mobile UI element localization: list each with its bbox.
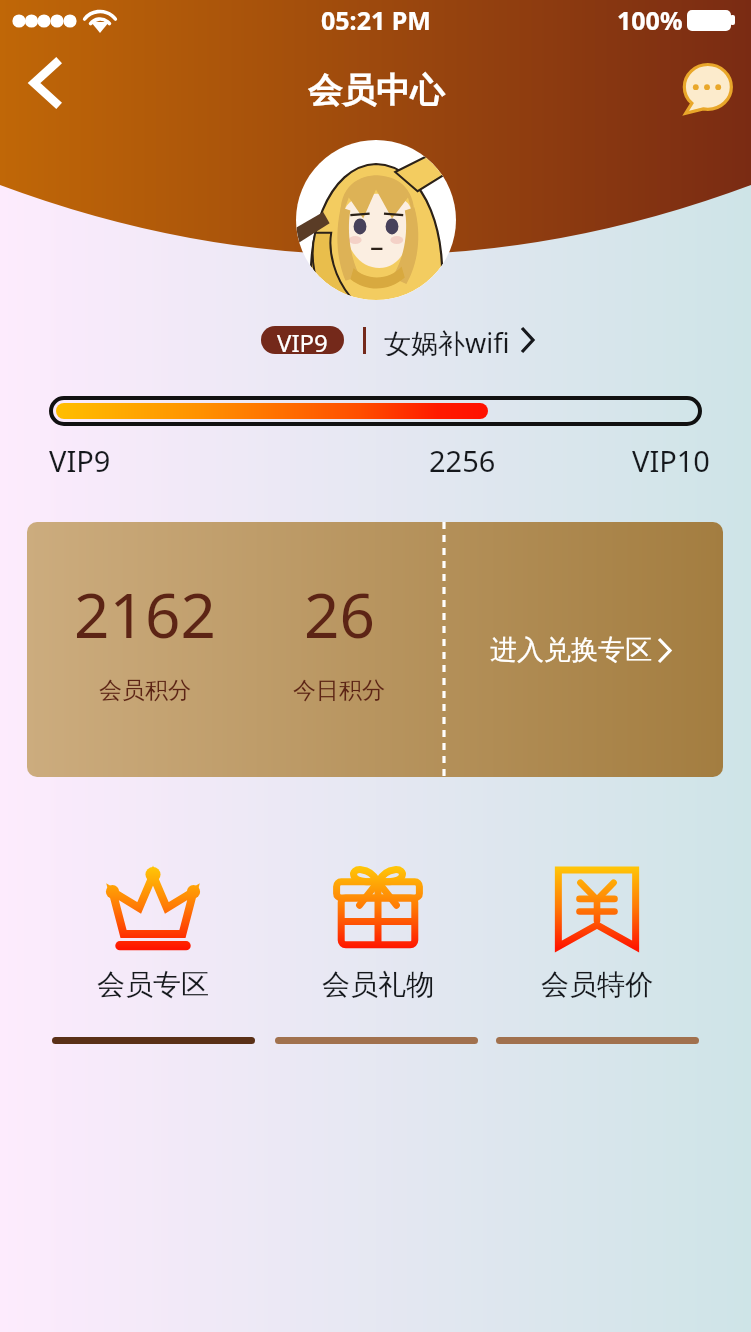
staticText: VIP9 [49,441,111,480]
button[interactable]: 2162 [27,572,265,705]
staticText: 女娲补wifi [384,324,510,356]
staticText: 会员专区 [97,967,209,1002]
button[interactable]: 会员礼物 [298,862,458,1002]
button[interactable]: 进入兑换专区 [490,626,672,674]
staticText: 05:21 PM [321,3,431,37]
staticText: 会员积分 [99,676,191,705]
staticText: 会员中心 [308,69,444,112]
staticText: 会员礼物 [322,967,434,1002]
staticText: VIP10 [632,441,710,480]
staticText: 进入兑换专区 [490,633,652,667]
staticText: 100% [617,3,683,37]
staticText: 26 [304,572,375,656]
button[interactable]: 会员特价 [517,862,677,1002]
button[interactable]: Back [11,49,79,117]
button[interactable]: VIP9 [261,326,344,354]
staticText: 今日积分 [293,676,385,705]
button[interactable]: Messages [673,54,741,122]
button[interactable]: 会员专区 [73,862,233,1002]
staticText: 会员特价 [541,967,653,1002]
staticText: 2162 [74,572,216,656]
button[interactable] [296,140,456,300]
button[interactable]: 26 [219,572,459,705]
staticText: 2256 [429,441,496,480]
staticText: VIP9 [277,326,328,354]
button[interactable]: 女娲补wifi [384,324,535,356]
